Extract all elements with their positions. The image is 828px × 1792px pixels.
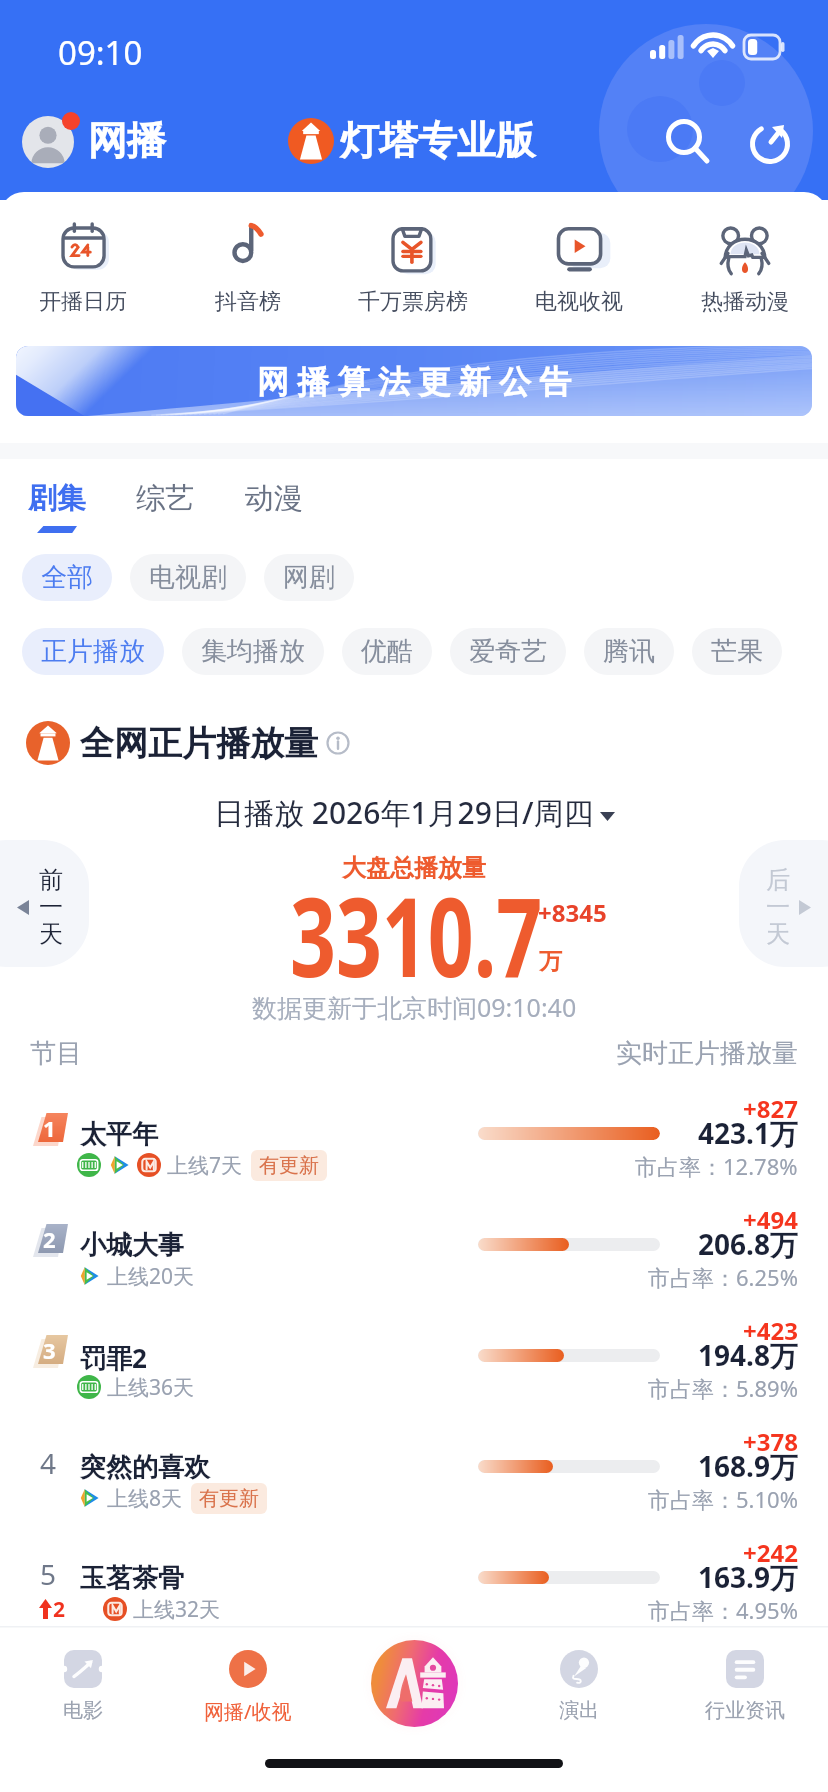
button[interactable] (0, 840, 89, 967)
staticText: 全网正片播放量 (80, 722, 318, 765)
button[interactable]: Share (738, 110, 802, 174)
button[interactable]: 网播 (22, 112, 166, 168)
button[interactable]: 5 (0, 1527, 828, 1638)
button[interactable]: 千万票房榜 (330, 218, 496, 316)
staticText: 实时正片播放量 (616, 1037, 798, 1070)
button[interactable]: 爱奇艺 (450, 628, 566, 675)
staticText: 动漫 (245, 480, 303, 517)
button[interactable] (739, 840, 828, 967)
staticText: 市占率：6.25% (648, 1262, 798, 1292)
staticText: 市占率：12.78% (635, 1151, 798, 1181)
button[interactable]: 网播/收视 (165, 1626, 330, 1792)
staticText: 大盘总播放量 (342, 853, 486, 883)
button[interactable]: 剧集 (24, 480, 90, 533)
staticText: 4 (40, 1444, 57, 1478)
staticText: 上线36天 (107, 1373, 195, 1402)
staticText: 市占率：4.95% (648, 1595, 798, 1625)
button[interactable]: Search (656, 110, 720, 174)
staticText: 热播动漫 (701, 288, 789, 316)
staticText: +8345 (538, 896, 607, 929)
staticText: 上线8天 (107, 1484, 183, 1513)
staticText: 09:10 (58, 30, 143, 75)
button[interactable]: 3 (0, 1305, 828, 1416)
button[interactable]: 芒果 (692, 628, 782, 675)
staticText: 太平年 (80, 1118, 158, 1151)
staticText: 腾讯 (603, 635, 655, 668)
button[interactable]: 行业资讯 (662, 1626, 828, 1792)
staticText: 一 (766, 892, 790, 919)
staticText: 正片播放 (41, 635, 145, 668)
staticText: 综艺 (136, 480, 194, 517)
staticText: 突然的喜欢 (80, 1451, 210, 1484)
button[interactable]: 电影 (0, 1626, 165, 1792)
staticText: +242 (743, 1536, 798, 1569)
button[interactable]: 灯塔 (371, 1640, 458, 1727)
staticText: 163.9万 (698, 1558, 798, 1596)
staticText: 2 (53, 1595, 66, 1624)
staticText: 3310.7 (290, 859, 543, 1009)
button[interactable]: 正片播放 (22, 628, 164, 675)
staticText: 电视收视 (535, 288, 623, 316)
staticText: 3 (43, 1335, 56, 1365)
staticText: +378 (743, 1425, 798, 1458)
staticText: 上线7天 (167, 1151, 243, 1180)
staticText: 芒果 (711, 635, 763, 668)
staticText: 抖音榜 (215, 288, 281, 316)
staticText: 市占率：5.89% (648, 1373, 798, 1403)
button[interactable]: 2 (0, 1194, 828, 1305)
staticText: 数据更新于北京时间09:10:40 (252, 990, 577, 1024)
button[interactable]: 抖音榜 (165, 218, 330, 316)
button[interactable]: 1 (0, 1083, 828, 1194)
staticText: +423 (743, 1314, 798, 1347)
staticText: 有更新 (199, 1486, 259, 1511)
staticText: 2 (43, 1224, 56, 1254)
staticText: 集均播放 (201, 635, 305, 668)
button[interactable]: 热播动漫 (662, 218, 828, 316)
button[interactable]: 电视剧 (130, 554, 246, 601)
staticText: 423.1万 (698, 1114, 798, 1152)
staticText: +827 (743, 1092, 798, 1125)
staticText: 千万票房榜 (358, 288, 468, 316)
button[interactable]: 综艺 (132, 480, 198, 526)
staticText: 万 (539, 947, 562, 976)
button[interactable]: 演出 (496, 1626, 662, 1792)
staticText: 天 (39, 919, 63, 946)
staticText: 电视剧 (149, 561, 227, 594)
staticText: 一 (39, 892, 63, 919)
staticText: 优酷 (361, 635, 413, 668)
button[interactable]: 电视收视 (496, 218, 662, 316)
button[interactable]: 开播日历 (0, 218, 165, 316)
staticText: 有更新 (259, 1153, 319, 1178)
button[interactable]: 日播放 2026年1月29日/周四 (0, 792, 828, 833)
button[interactable]: 动漫 (241, 480, 307, 526)
button[interactable]: 全网正片播放量 (26, 721, 350, 765)
button[interactable]: 4 (0, 1416, 828, 1527)
staticText: 小城大事 (80, 1229, 184, 1262)
staticText: 市占率：5.10% (648, 1484, 798, 1514)
staticText: 5 (40, 1555, 57, 1589)
staticText: +494 (743, 1203, 798, 1236)
button[interactable]: 优酷 (342, 628, 432, 675)
staticText: 1 (43, 1113, 56, 1143)
staticText: 网播 (88, 116, 166, 165)
button[interactable]: 灯塔专业版 (288, 116, 535, 165)
staticText: 后 (766, 865, 790, 892)
staticText: 节目 (30, 1037, 82, 1070)
button[interactable]: 全部 (22, 554, 112, 601)
button[interactable]: 集均播放 (182, 628, 324, 675)
button[interactable]: 网剧 (264, 554, 354, 601)
staticText: 演出 (559, 1698, 599, 1723)
staticText: 194.8万 (698, 1336, 798, 1374)
staticText: 168.9万 (698, 1447, 798, 1485)
staticText: 玉茗茶骨 (80, 1562, 184, 1595)
staticText: 开播日历 (39, 288, 127, 316)
button[interactable]: 腾讯 (584, 628, 674, 675)
staticText: 网剧 (283, 561, 335, 594)
staticText: 上线32天 (133, 1595, 221, 1624)
button[interactable]: 网 播 算 法 更 新 公 告 (16, 346, 812, 416)
staticText: 206.8万 (698, 1225, 798, 1263)
staticText: 网 播 算 法 更 新 公 告 (257, 359, 572, 403)
staticText: 上线20天 (107, 1262, 195, 1291)
staticText: 灯塔专业版 (340, 116, 535, 165)
staticText: 爱奇艺 (469, 635, 547, 668)
